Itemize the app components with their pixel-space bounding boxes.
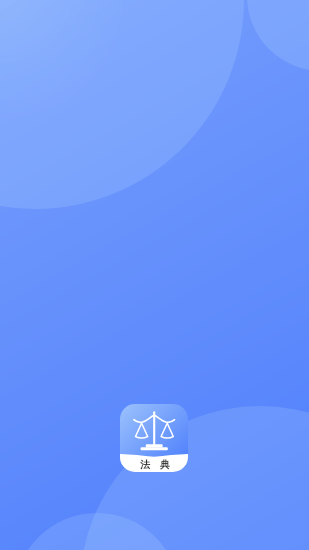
staticText: 法: [140, 458, 150, 471]
button[interactable]: 法典 app logo: [120, 404, 188, 472]
staticText: 典: [160, 458, 170, 471]
